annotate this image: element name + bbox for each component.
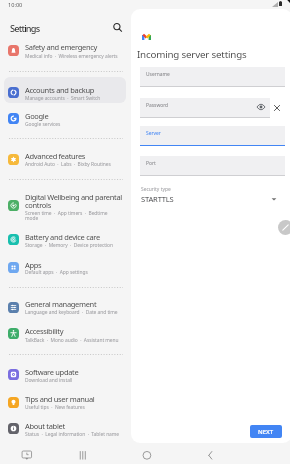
button[interactable] bbox=[4, 293, 130, 315]
staticText: Password bbox=[146, 102, 169, 109]
button[interactable]: Hide keyboard bbox=[16, 440, 37, 461]
staticText: Default apps · App settings bbox=[25, 269, 88, 276]
staticText: Username bbox=[146, 71, 170, 78]
button[interactable]: Home bbox=[140, 440, 161, 461]
button[interactable]: Server bbox=[140, 126, 285, 146]
staticText: Medical info · Wireless emergency alerts bbox=[25, 53, 118, 60]
staticText: Advanced features bbox=[25, 151, 86, 161]
button[interactable]: Clear bbox=[271, 102, 283, 114]
staticText: Google bbox=[25, 111, 49, 121]
staticText: About tablet bbox=[25, 421, 65, 431]
staticText: Status · Legal information · Tablet name bbox=[25, 431, 120, 438]
staticText: Safety and emergency bbox=[25, 42, 98, 52]
staticText: Software update bbox=[25, 367, 79, 377]
button[interactable] bbox=[4, 37, 130, 60]
button[interactable] bbox=[4, 254, 130, 276]
staticText: Security type bbox=[141, 186, 171, 193]
button[interactable] bbox=[4, 79, 130, 101]
button[interactable] bbox=[4, 105, 130, 127]
staticText: Language and keyboard · Date and time bbox=[25, 309, 118, 316]
staticText: Tips and user manual bbox=[25, 394, 95, 404]
staticText: mode bbox=[25, 215, 39, 222]
staticText: Accounts and backup bbox=[25, 85, 95, 95]
button[interactable] bbox=[4, 415, 130, 438]
button[interactable]: Security type dropdown bbox=[268, 193, 280, 205]
staticText: Server bbox=[146, 130, 161, 137]
button[interactable] bbox=[4, 389, 130, 412]
staticText: Screen time · App timers · Bedtime bbox=[25, 210, 108, 217]
staticText: Download and install bbox=[25, 377, 73, 384]
staticText: Incoming server settings bbox=[137, 48, 247, 61]
button[interactable]: Recent apps bbox=[75, 440, 96, 461]
staticText: Port bbox=[146, 160, 156, 167]
staticText: Manage accounts · Smart Switch bbox=[25, 95, 101, 102]
button[interactable]: Back bbox=[203, 440, 224, 461]
button[interactable] bbox=[4, 361, 130, 384]
staticText: NEXT bbox=[258, 428, 274, 436]
button[interactable]: NEXT bbox=[250, 425, 282, 438]
staticText: Storage · Memory · Device protection bbox=[25, 242, 113, 249]
button[interactable]: Username bbox=[140, 67, 285, 87]
staticText: 10:00 bbox=[8, 1, 23, 9]
button[interactable] bbox=[4, 186, 130, 226]
button[interactable] bbox=[4, 146, 130, 168]
button[interactable] bbox=[4, 320, 130, 344]
staticText: TalkBack · Mono audio · Assistant menu bbox=[25, 337, 119, 344]
staticText: Settings bbox=[10, 22, 40, 35]
button[interactable]: Search bbox=[110, 20, 125, 35]
staticText: Apps bbox=[25, 260, 42, 270]
staticText: General management bbox=[25, 299, 97, 309]
staticText: Useful tips · New features bbox=[25, 404, 85, 411]
staticText: Accessibility bbox=[25, 326, 64, 336]
button[interactable]: Port bbox=[140, 156, 285, 176]
button[interactable]: Show password bbox=[255, 101, 267, 113]
staticText: STARTTLS bbox=[141, 194, 174, 204]
staticText: Google services bbox=[25, 121, 61, 128]
button[interactable]: Password bbox=[140, 98, 270, 118]
staticText: Battery and device care bbox=[25, 232, 100, 242]
staticText: Digital Wellbeing and parental bbox=[25, 192, 122, 202]
staticText: controls bbox=[25, 200, 51, 210]
staticText: Android Auto · Labs · Bixby Routines bbox=[25, 161, 111, 168]
button[interactable] bbox=[4, 226, 130, 249]
button[interactable]: Edit bbox=[278, 220, 290, 235]
